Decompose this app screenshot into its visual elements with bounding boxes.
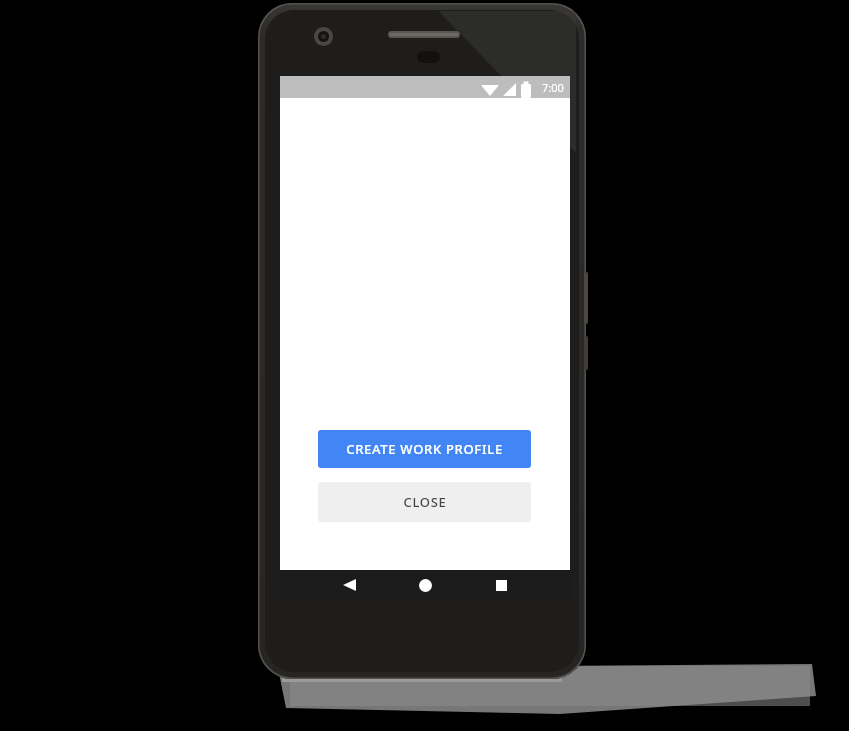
button[interactable]: Back bbox=[324, 570, 374, 600]
button[interactable]: CREATE WORK PROFILE bbox=[318, 430, 531, 468]
button[interactable]: CLOSE bbox=[318, 482, 531, 522]
staticText: CREATE WORK PROFILE bbox=[346, 440, 503, 458]
staticText: 7:00 bbox=[542, 80, 564, 95]
other: Status icons bbox=[480, 76, 526, 98]
button[interactable]: Home bbox=[400, 570, 450, 600]
button[interactable]: Recent apps bbox=[476, 570, 526, 600]
staticText: CLOSE bbox=[403, 493, 447, 511]
